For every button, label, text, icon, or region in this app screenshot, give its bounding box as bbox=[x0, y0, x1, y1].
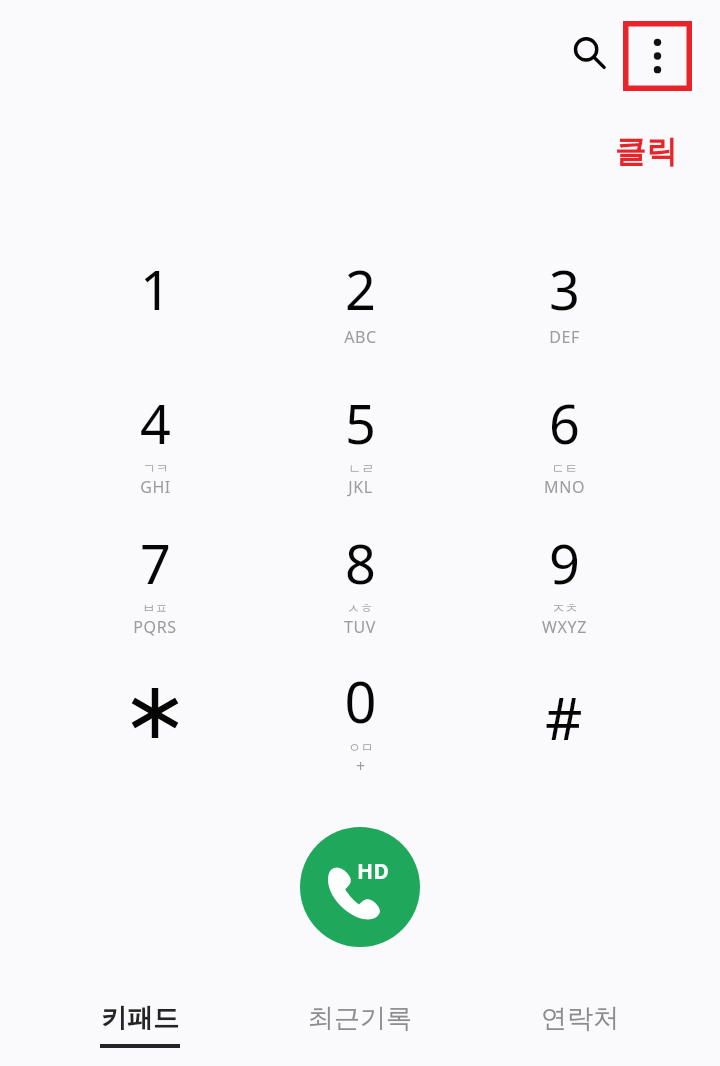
staticText: # bbox=[545, 678, 583, 757]
staticText: 9 bbox=[549, 526, 580, 600]
staticText: HD bbox=[357, 857, 390, 886]
button[interactable]: 0 bbox=[285, 663, 435, 793]
staticText: DEF bbox=[549, 326, 580, 348]
staticText: 8 bbox=[345, 526, 376, 600]
staticText: WXYZ bbox=[542, 616, 587, 638]
button[interactable]: Search bbox=[566, 30, 612, 76]
staticText: 1 bbox=[140, 252, 171, 326]
staticText: 클릭 bbox=[615, 132, 677, 171]
staticText: PQRS bbox=[133, 616, 177, 638]
staticText: 3 bbox=[549, 252, 580, 326]
staticText: 6 bbox=[549, 386, 580, 460]
button[interactable]: 연락처 bbox=[490, 1002, 670, 1066]
staticText: 연락처 bbox=[541, 1002, 619, 1035]
button[interactable]: 7 bbox=[80, 526, 230, 651]
staticText: 5 bbox=[345, 386, 376, 460]
button[interactable]: 2 bbox=[285, 252, 435, 357]
staticText: 최근기록 bbox=[308, 1002, 412, 1035]
button[interactable]: 4 bbox=[80, 386, 230, 511]
button[interactable]: 6 bbox=[489, 386, 639, 511]
staticText: JKL bbox=[348, 476, 373, 498]
staticText: ㅅㅎ bbox=[347, 600, 373, 616]
staticText: ABC bbox=[344, 326, 377, 348]
button[interactable]: More options bbox=[623, 21, 692, 91]
staticText: 0 bbox=[344, 663, 377, 739]
button[interactable]: 9 bbox=[489, 526, 639, 651]
button[interactable]: 8 bbox=[285, 526, 435, 651]
staticText: ㄴㄹ bbox=[348, 460, 374, 476]
staticText: ㅈㅊ bbox=[552, 600, 578, 616]
button[interactable]: 5 bbox=[285, 386, 435, 511]
staticText: 2 bbox=[345, 252, 376, 326]
staticText: + bbox=[356, 755, 366, 777]
staticText: MNO bbox=[544, 476, 585, 498]
staticText: ㅂㅍ bbox=[142, 600, 168, 616]
button[interactable]: 키패드 bbox=[50, 1002, 230, 1066]
staticText: 4 bbox=[140, 386, 171, 460]
button[interactable]: Call bbox=[300, 827, 420, 947]
staticText: ㄱㅋ bbox=[143, 460, 169, 476]
button[interactable]: 3 bbox=[489, 252, 639, 357]
staticText: ㅇㅁ bbox=[348, 739, 374, 755]
staticText: GHI bbox=[140, 476, 171, 498]
button[interactable]: 최근기록 bbox=[270, 1002, 450, 1066]
staticText: ㄷㅌ bbox=[552, 460, 578, 476]
staticText: TUV bbox=[344, 616, 376, 638]
staticText: 키패드 bbox=[101, 1002, 179, 1035]
button[interactable]: Pound bbox=[489, 666, 639, 781]
staticText: 7 bbox=[140, 526, 171, 600]
button[interactable]: 1 bbox=[80, 252, 230, 357]
button[interactable]: Star bbox=[80, 666, 230, 781]
